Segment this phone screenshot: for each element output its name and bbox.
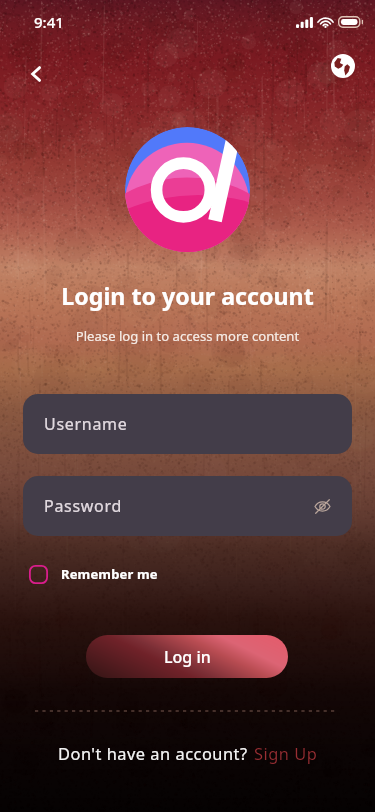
button[interactable]: Language (327, 50, 359, 82)
button[interactable]: Remember me (29, 558, 158, 590)
button[interactable]: Back (20, 58, 52, 90)
button[interactable]: Password (23, 476, 352, 536)
staticText: Username (44, 413, 128, 435)
button[interactable]: Show password (310, 494, 334, 518)
staticText: Password (44, 495, 122, 517)
staticText: Sign Up (254, 742, 318, 764)
staticText: Log in (164, 646, 211, 668)
button[interactable]: Username (23, 394, 352, 454)
button[interactable]: Sign Up (248, 742, 318, 764)
staticText: Don't have an account? (58, 742, 248, 764)
staticText: Remember me (61, 565, 158, 583)
button[interactable]: Log in (86, 635, 288, 678)
staticText: Please log in to access more content (0, 327, 375, 345)
staticText: 9:41 (34, 12, 64, 32)
staticText: Login to your account (0, 280, 375, 312)
